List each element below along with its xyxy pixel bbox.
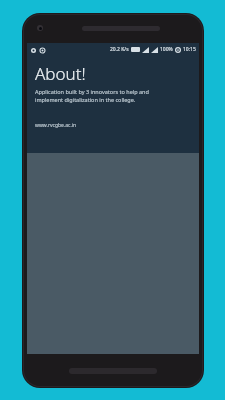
staticText: 20.2 K/s — [110, 46, 129, 53]
other: Notification — [30, 47, 36, 53]
button[interactable]: www.rvcgbe.ac.in — [35, 122, 77, 129]
staticText: 100% — [160, 46, 173, 53]
staticText: About! — [35, 62, 86, 85]
staticText: 10:15 — [183, 46, 196, 53]
staticText: Application built by 3 innovators to hel… — [35, 88, 167, 104]
staticText: www.rvcgbe.ac.in — [35, 122, 77, 129]
other: Notification — [39, 47, 45, 53]
